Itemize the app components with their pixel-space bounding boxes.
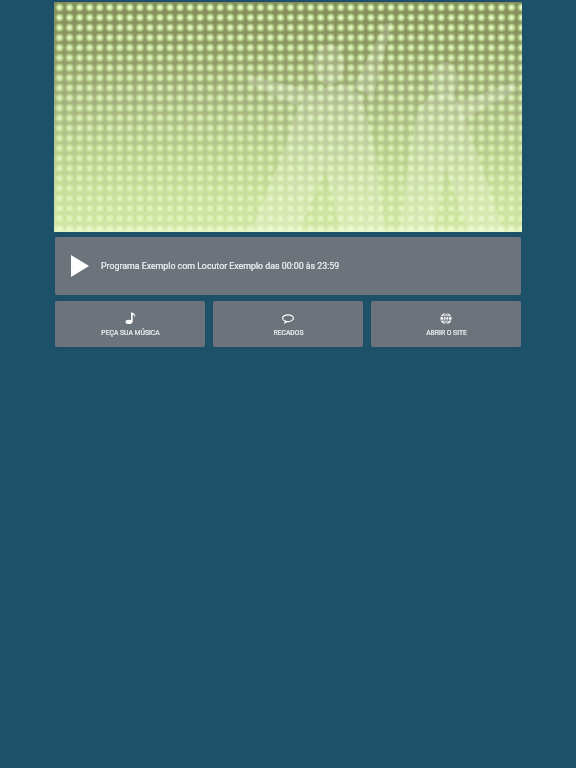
button[interactable]: PEÇA SUA MÚSICA (55, 301, 205, 347)
staticText: RECADOS (273, 329, 304, 337)
button[interactable]: Play (55, 237, 521, 295)
staticText: Programa Exemplo com Locutor Exemplo das… (101, 261, 340, 271)
button[interactable]: ABRIR O SITE (371, 301, 521, 347)
other: Play (71, 255, 89, 277)
staticText: PEÇA SUA MÚSICA (101, 329, 160, 337)
staticText: ABRIR O SITE (426, 329, 467, 337)
button[interactable]: RECADOS (213, 301, 363, 347)
